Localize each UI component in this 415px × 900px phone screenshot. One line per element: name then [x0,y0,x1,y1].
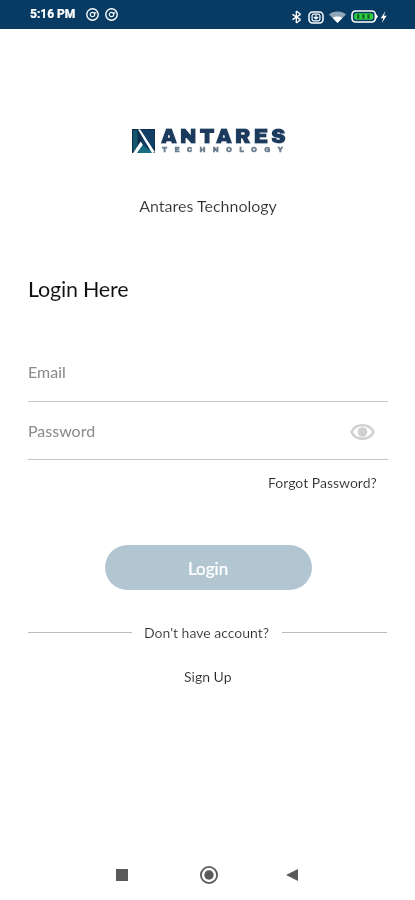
button[interactable]: Home [187,853,231,897]
staticText: Forgot Password? [268,474,377,491]
staticText: ANTARES [161,125,289,147]
button[interactable]: Show password [345,418,379,446]
button[interactable]: Recent apps [100,853,144,897]
staticText: Sign Up [184,668,232,685]
staticText: Don't have account? [144,624,270,641]
staticText: Login Here [28,276,129,302]
button[interactable]: Sign Up [184,668,232,685]
button[interactable]: Forgot Password? [268,474,377,491]
staticText: Password [28,421,96,440]
staticText: Login [188,558,229,578]
staticText: 5:16 PM [30,7,76,21]
staticText: Antares Technology [139,196,277,215]
staticText: Email [28,362,66,381]
button[interactable]: Back [270,853,314,897]
button[interactable]: Login [105,545,312,590]
staticText: TECHNOLOGY [162,146,291,154]
